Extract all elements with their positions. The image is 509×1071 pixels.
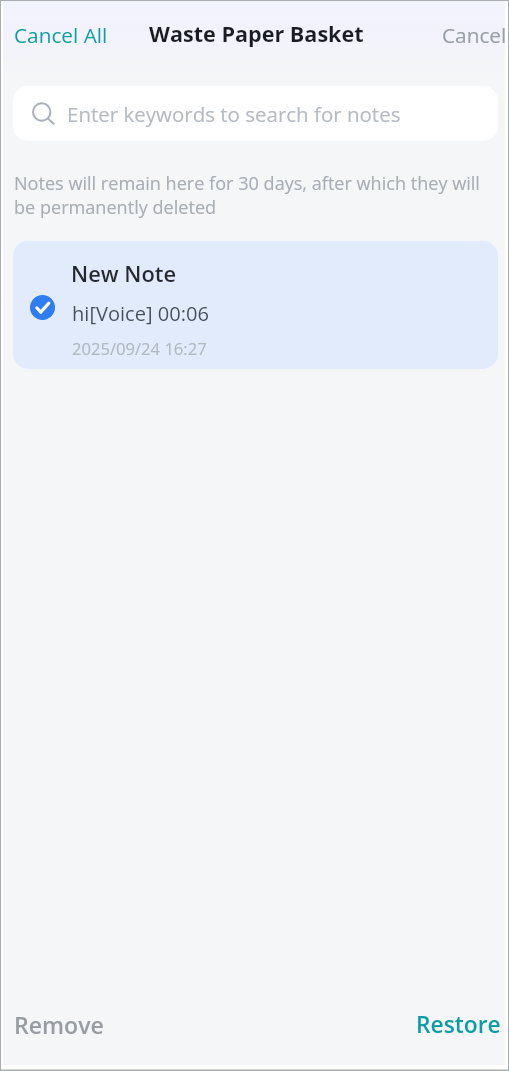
button[interactable]: Selected — [13, 241, 498, 369]
button[interactable]: Cancel All — [0, 13, 118, 57]
button[interactable]: Enter keywords to search for notes — [13, 86, 498, 141]
staticText: hi[Voice] 00:06 — [72, 300, 210, 327]
button[interactable]: Cancel — [432, 13, 509, 57]
staticText: New Note — [71, 259, 177, 289]
staticText: 2025/09/24 16:27 — [72, 337, 207, 360]
button[interactable]: Remove — [0, 999, 118, 1050]
button[interactable]: Restore — [402, 999, 509, 1050]
staticText: Waste Paper Basket — [149, 19, 364, 48]
staticText: Enter keywords to search for notes — [67, 100, 401, 128]
staticText: Notes will remain here for 30 days, afte… — [14, 171, 486, 219]
other: Selected — [30, 295, 55, 320]
